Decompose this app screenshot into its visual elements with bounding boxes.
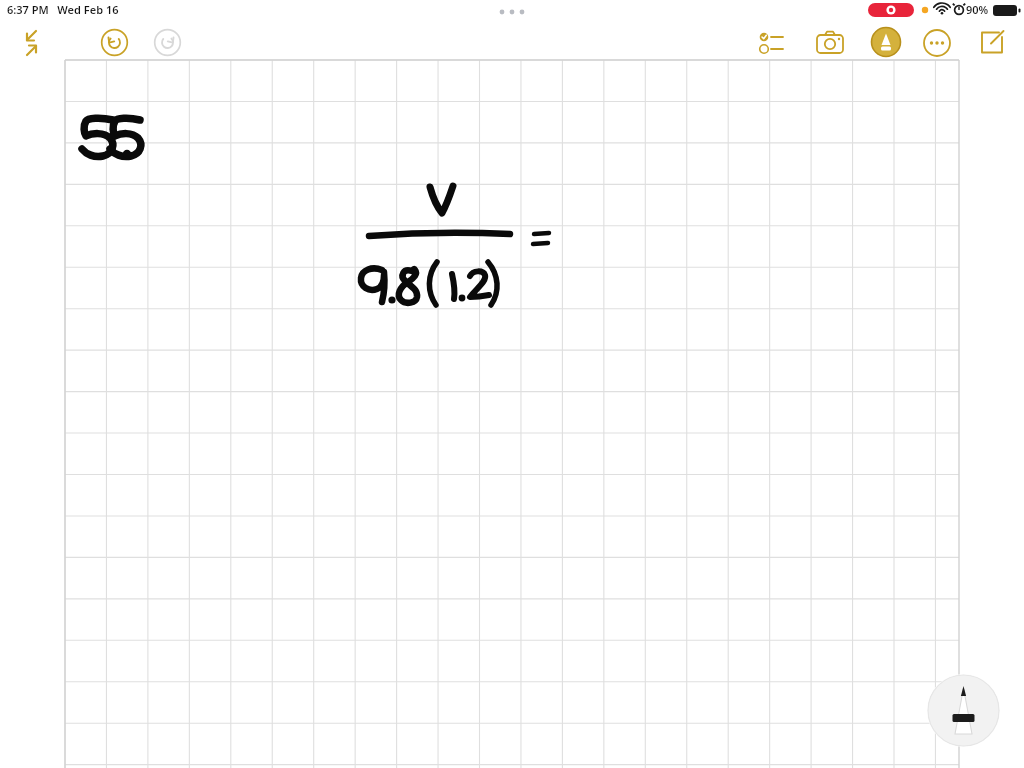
button[interactable]: Redo <box>154 29 181 56</box>
button[interactable]: Camera <box>816 30 844 56</box>
button[interactable]: Undo <box>101 29 128 56</box>
button[interactable]: Pen tool widget <box>927 674 1000 747</box>
staticText: 90% <box>966 2 989 17</box>
button[interactable]: More options <box>923 29 951 57</box>
button[interactable]: Pen tool <box>871 27 901 57</box>
staticText: 6:37 PM Wed Feb 16 <box>7 2 119 17</box>
button[interactable]: Collapse <box>16 27 48 59</box>
button[interactable]: Checklist <box>759 29 787 57</box>
button[interactable]: New note <box>978 29 1006 57</box>
